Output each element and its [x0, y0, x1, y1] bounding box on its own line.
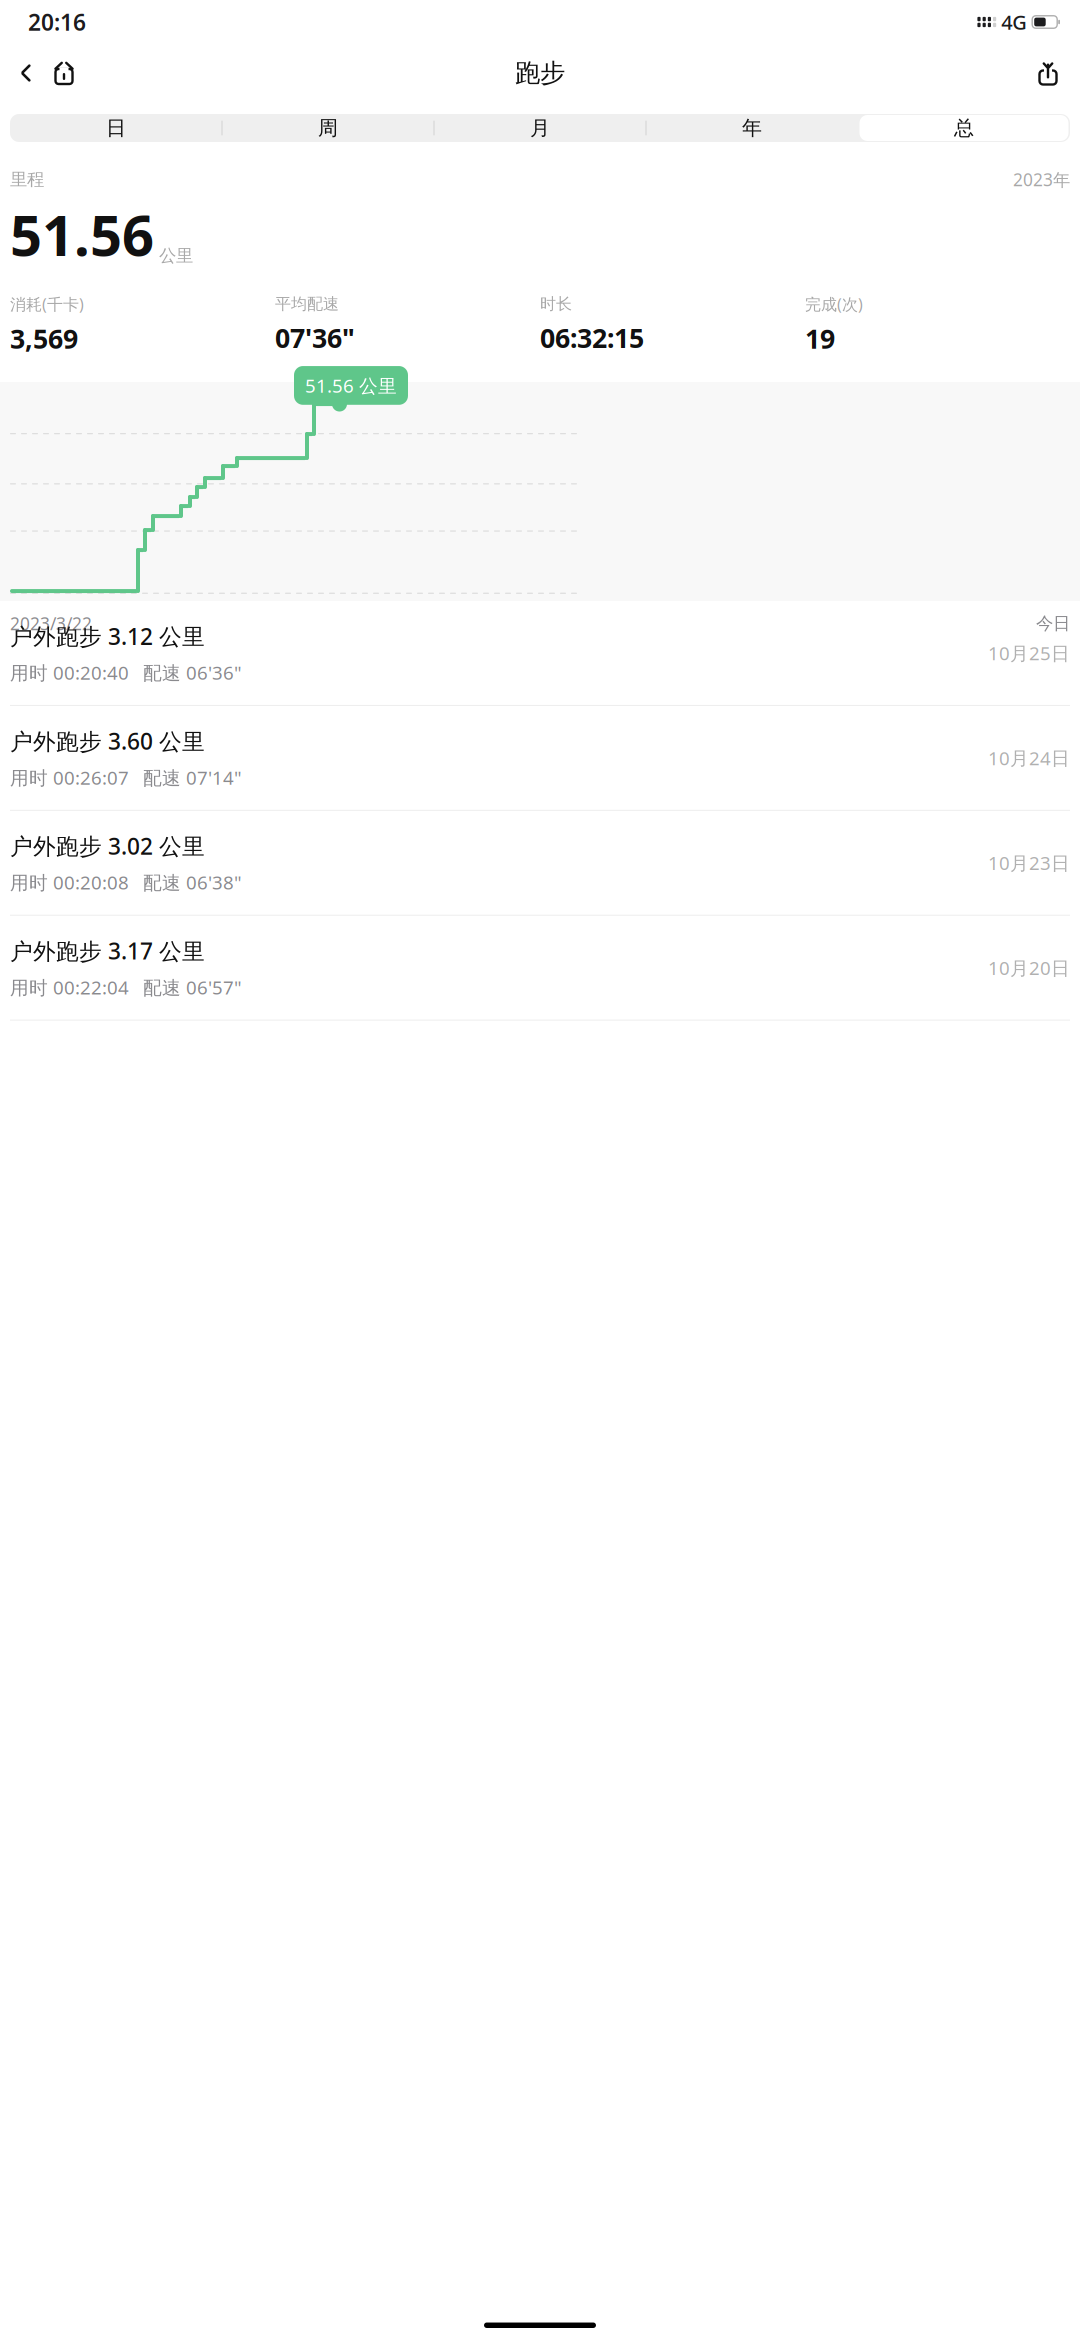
staticText: 配速 06'38": [143, 870, 242, 895]
staticText: 2023/3/22: [10, 612, 92, 635]
button[interactable]: 日: [10, 114, 222, 142]
button[interactable]: 返回: [8, 51, 44, 95]
button[interactable]: 月: [434, 114, 646, 142]
staticText: 里程: [10, 169, 44, 190]
button[interactable]: 户外跑步 3.17 公里: [0, 916, 1080, 1021]
staticText: 消耗(千卡): [10, 293, 84, 315]
button[interactable]: 户外跑步 3.02 公里: [0, 811, 1080, 916]
staticText: 用时 00:20:40: [10, 660, 129, 685]
staticText: 10月24日: [988, 745, 1070, 770]
staticText: 10月23日: [988, 850, 1070, 875]
staticText: 今日: [1036, 613, 1070, 634]
button[interactable]: 总: [858, 114, 1070, 142]
button[interactable]: 户外跑步 3.60 公里: [0, 706, 1080, 811]
button[interactable]: 分享: [1028, 51, 1068, 95]
button[interactable]: 户外跑步 3.12 公里: [0, 601, 1080, 706]
staticText: 用时 00:26:07: [10, 765, 129, 790]
staticText: 20:16: [28, 7, 86, 37]
button[interactable]: 年: [646, 114, 858, 142]
staticText: 配速 06'36": [143, 660, 242, 685]
staticText: 用时 00:22:04: [10, 975, 129, 1000]
staticText: 06:32:15: [540, 320, 644, 355]
staticText: 日: [106, 116, 126, 140]
staticText: 总: [954, 116, 974, 140]
staticText: 51.56: [10, 197, 154, 271]
staticText: 51.56 公里: [305, 373, 397, 398]
staticText: 年: [742, 116, 762, 140]
staticText: 2023年: [1013, 168, 1070, 191]
staticText: 19: [805, 321, 835, 356]
staticText: 用时 00:20:08: [10, 870, 129, 895]
staticText: 户外跑步 3.02 公里: [10, 831, 205, 861]
button[interactable]: 周: [222, 114, 434, 142]
staticText: 10月25日: [988, 641, 1070, 665]
staticText: 配速 07'14": [143, 765, 242, 790]
staticText: 平均配速: [275, 294, 339, 314]
staticText: 月: [530, 116, 550, 140]
staticText: 户外跑步 3.17 公里: [10, 936, 205, 966]
button[interactable]: 主页: [44, 51, 84, 95]
staticText: 周: [318, 116, 338, 140]
staticText: 公里: [159, 245, 193, 266]
staticText: 跑步: [515, 57, 565, 88]
staticText: 时长: [540, 294, 572, 314]
staticText: 4G: [1001, 9, 1027, 35]
staticText: 户外跑步 3.60 公里: [10, 726, 205, 756]
staticText: 完成(次): [805, 293, 863, 315]
staticText: 配速 06'57": [143, 975, 242, 1000]
staticText: 3,569: [10, 321, 78, 356]
staticText: 10月20日: [988, 955, 1070, 980]
staticText: 户外跑步 3.12 公里: [10, 621, 205, 651]
staticText: 07'36": [275, 320, 355, 355]
